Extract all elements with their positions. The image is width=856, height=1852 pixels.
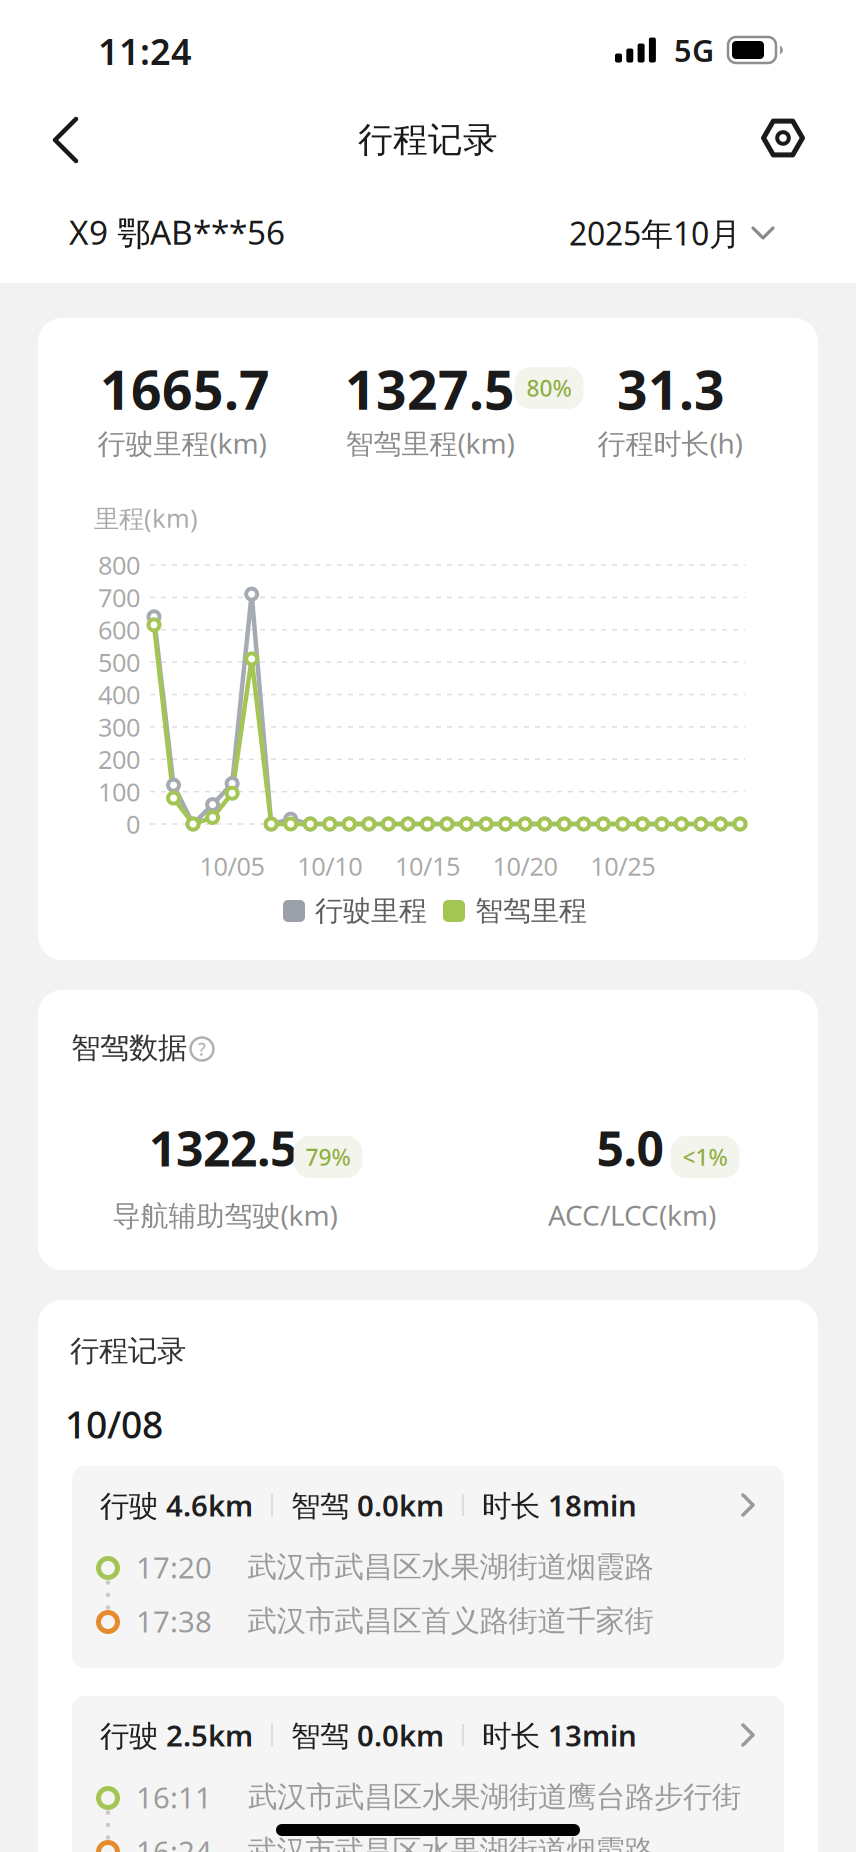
staticText: 10/05 xyxy=(200,849,265,883)
staticText: 10/15 xyxy=(395,849,460,883)
staticText: 10/10 xyxy=(297,849,362,883)
staticText: X9 鄂AB***56 xyxy=(69,210,285,254)
staticText: 400 xyxy=(98,678,140,711)
staticText: ? xyxy=(198,1037,206,1060)
button[interactable]: X9 鄂AB***56 xyxy=(69,210,285,254)
staticText: 800 xyxy=(98,548,140,582)
staticText: 智驾里程(km) xyxy=(345,424,514,462)
staticText: 11:24 xyxy=(98,27,192,75)
button[interactable]: 2025年10月 xyxy=(569,212,775,254)
staticText: 5.0 xyxy=(596,1116,663,1180)
staticText: 17:38 xyxy=(136,1601,212,1640)
staticText: 31.3 xyxy=(617,354,725,424)
staticText: 导航辅助驾驶(km) xyxy=(112,1196,337,1234)
staticText: 17:20 xyxy=(136,1547,212,1586)
staticText: 600 xyxy=(98,613,140,646)
button[interactable]: ? xyxy=(187,1034,217,1064)
button[interactable] xyxy=(753,108,813,168)
staticText: 里程(km) xyxy=(94,501,198,535)
staticText: 16:11 xyxy=(136,1777,212,1816)
staticText: ACC/LCC(km) xyxy=(548,1196,716,1234)
staticText: 80% xyxy=(526,373,571,403)
staticText: 时长 13min xyxy=(482,1715,637,1754)
staticText: 武汉市武昌区水果湖街道烟霞路 xyxy=(247,1833,653,1852)
staticText: 行程记录 xyxy=(358,119,498,161)
staticText: 100 xyxy=(98,775,140,808)
staticText: 16:24 xyxy=(136,1831,212,1852)
staticText: 行驶 4.6km xyxy=(100,1485,253,1524)
staticText: 行程时长(h) xyxy=(597,424,742,462)
staticText: 10/08 xyxy=(65,1399,163,1449)
staticText: 5G xyxy=(674,30,714,70)
staticText: 智驾 0.0km xyxy=(291,1485,444,1524)
staticText: 时长 18min xyxy=(482,1485,637,1524)
staticText: 智驾 0.0km xyxy=(291,1715,444,1754)
staticText: <1% xyxy=(682,1142,727,1172)
staticText: 500 xyxy=(98,645,140,679)
staticText: 1322.5 xyxy=(149,1116,297,1180)
staticText: 0 xyxy=(126,807,140,841)
staticText: 300 xyxy=(98,710,140,744)
staticText: 行驶 2.5km xyxy=(100,1715,253,1754)
staticText: 行程记录 xyxy=(70,1333,186,1369)
staticText: 10/20 xyxy=(493,849,558,883)
button[interactable]: 行驶 4.6km xyxy=(72,1466,784,1668)
staticText: 79% xyxy=(305,1142,350,1172)
button[interactable] xyxy=(36,110,96,170)
staticText: 1665.7 xyxy=(100,354,270,424)
staticText: 200 xyxy=(98,742,140,776)
staticText: 行驶里程 xyxy=(315,894,427,928)
staticText: 1327.5 xyxy=(345,354,515,424)
staticText: 武汉市武昌区水果湖街道烟霞路 xyxy=(247,1549,653,1585)
staticText: 10/25 xyxy=(590,849,655,883)
staticText: 武汉市武昌区水果湖街道鹰台路步行街 xyxy=(248,1779,741,1815)
staticText: 智驾数据 xyxy=(71,1030,187,1066)
staticText: 智驾里程 xyxy=(475,894,587,928)
staticText: 700 xyxy=(98,581,140,614)
button[interactable]: 行驶 2.5km xyxy=(72,1696,784,1852)
staticText: 武汉市武昌区首义路街道千家街 xyxy=(247,1603,653,1639)
staticText: 行驶里程(km) xyxy=(97,424,266,462)
staticText: 2025年10月 xyxy=(569,212,741,254)
